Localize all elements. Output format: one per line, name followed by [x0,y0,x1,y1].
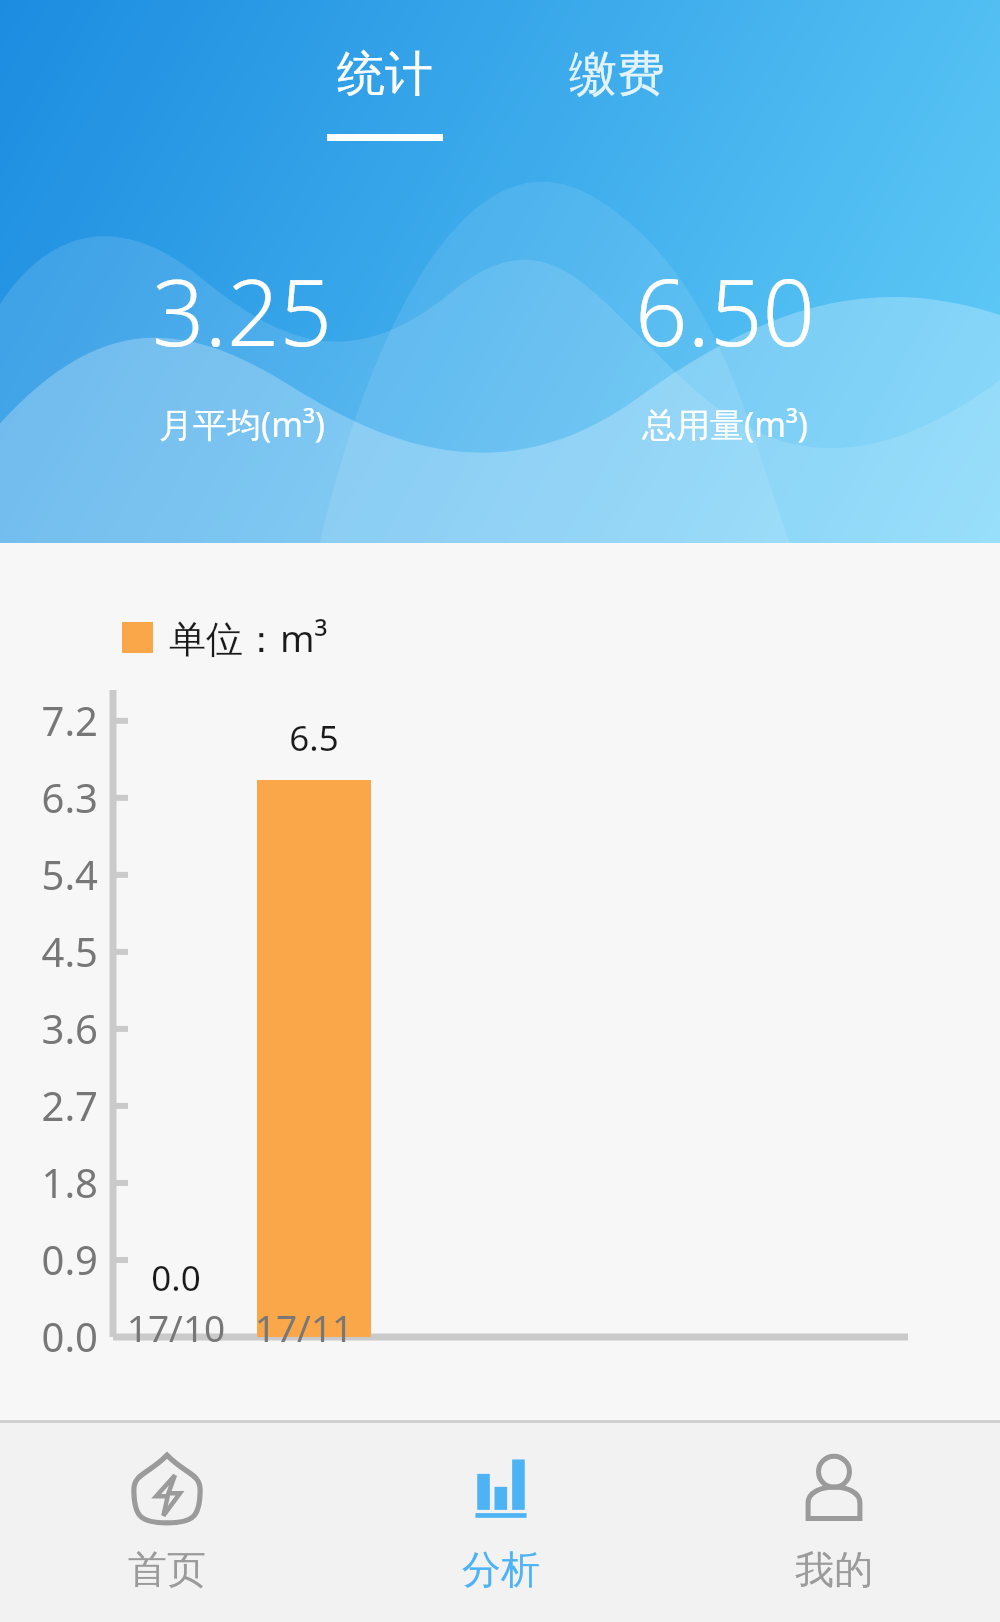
button[interactable]: 分析 [334,1423,667,1622]
staticText: 缴费 [532,44,702,104]
staticText: 月平均(m³) [42,401,442,447]
staticText: 4.5 [10,924,98,978]
button[interactable]: 统计 [300,24,470,154]
staticText: 0.0 [116,1254,236,1302]
button[interactable]: 首页 [0,1423,334,1622]
staticText: 1.8 [10,1155,98,1209]
staticText: 7.2 [10,693,98,747]
staticText: 统计 [300,44,470,104]
staticText: 单位：m³ [169,612,328,663]
staticText: 6.5 [254,714,374,762]
staticText: 0.0 [10,1309,98,1363]
staticText: 3.25 [42,248,442,373]
staticText: 我的 [795,1545,873,1594]
staticText: 分析 [462,1545,540,1594]
staticText: 3.6 [10,1001,98,1055]
staticText: 首页 [128,1545,206,1594]
staticText: 17/11 [224,1302,384,1352]
staticText: 6.50 [525,248,925,373]
button[interactable]: 缴费 [532,24,702,154]
other: 分析 [465,1453,537,1525]
staticText: 0.9 [10,1232,98,1286]
other: 首页 [131,1453,203,1525]
staticText: 5.4 [10,847,98,901]
staticText: 17/10 [96,1302,256,1352]
button[interactable]: 我的 [667,1423,1000,1622]
staticText: 2.7 [10,1078,98,1132]
staticText: 6.3 [10,770,98,824]
staticText: 总用量(m³) [525,401,925,447]
other: 我的 [798,1453,870,1525]
